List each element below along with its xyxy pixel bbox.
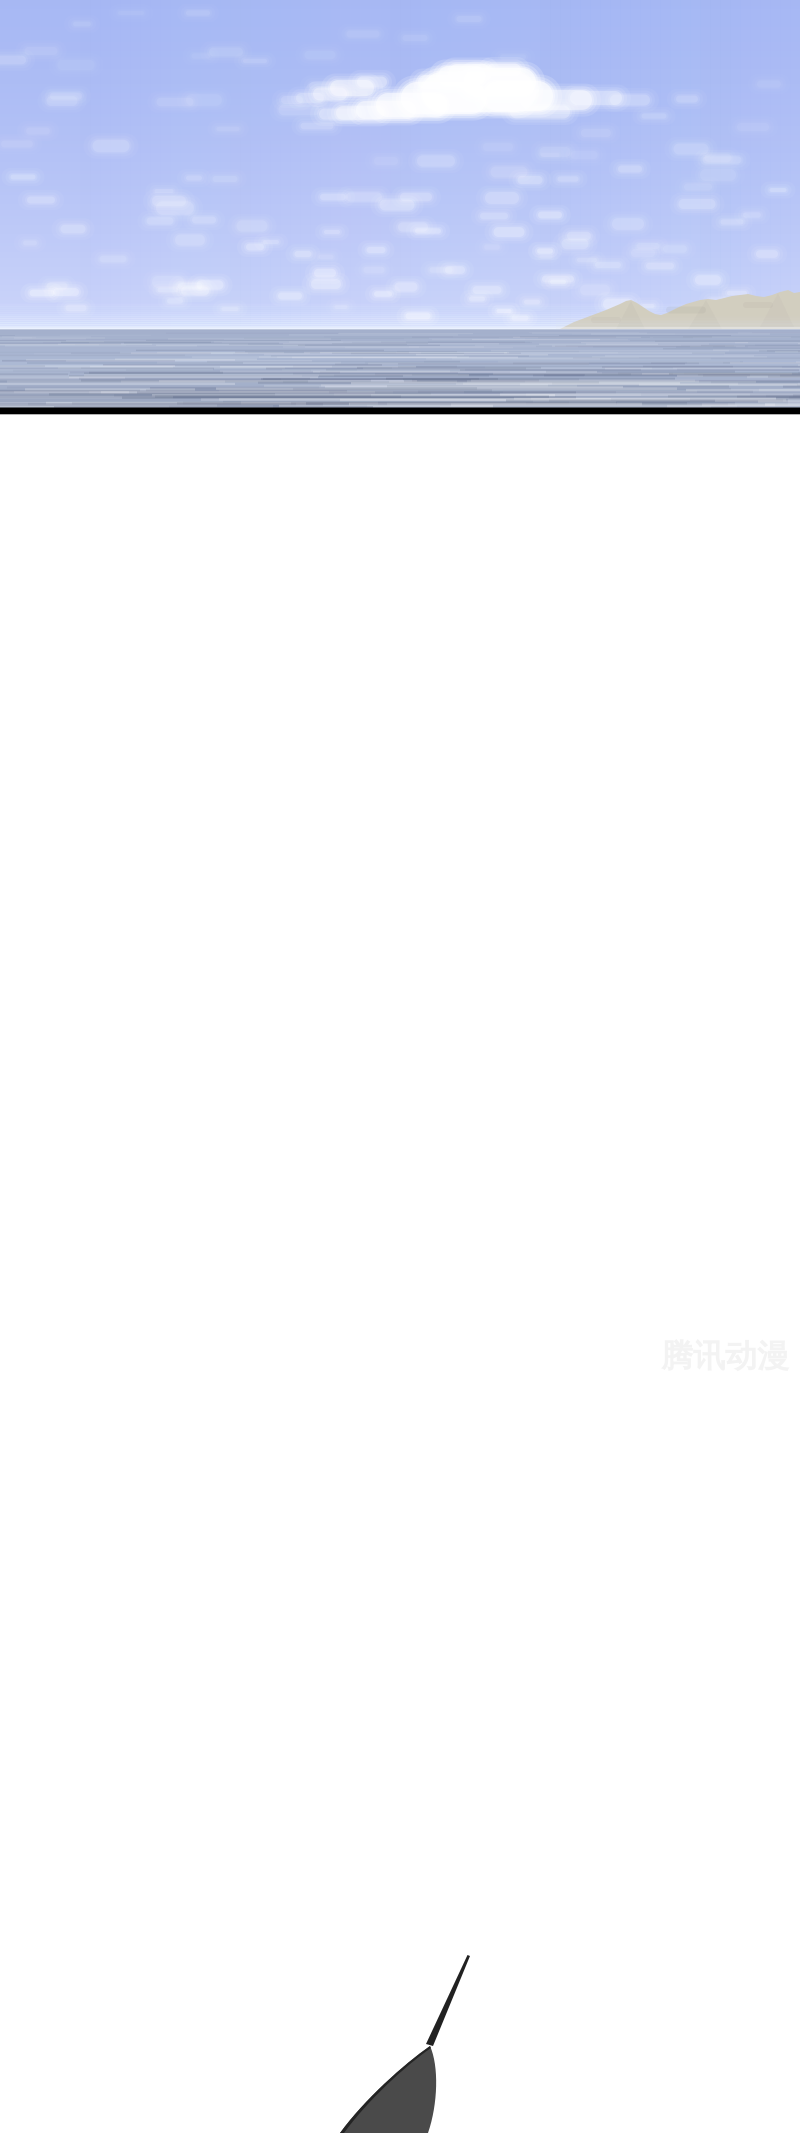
staticText: 腾讯动漫	[661, 1336, 789, 1376]
